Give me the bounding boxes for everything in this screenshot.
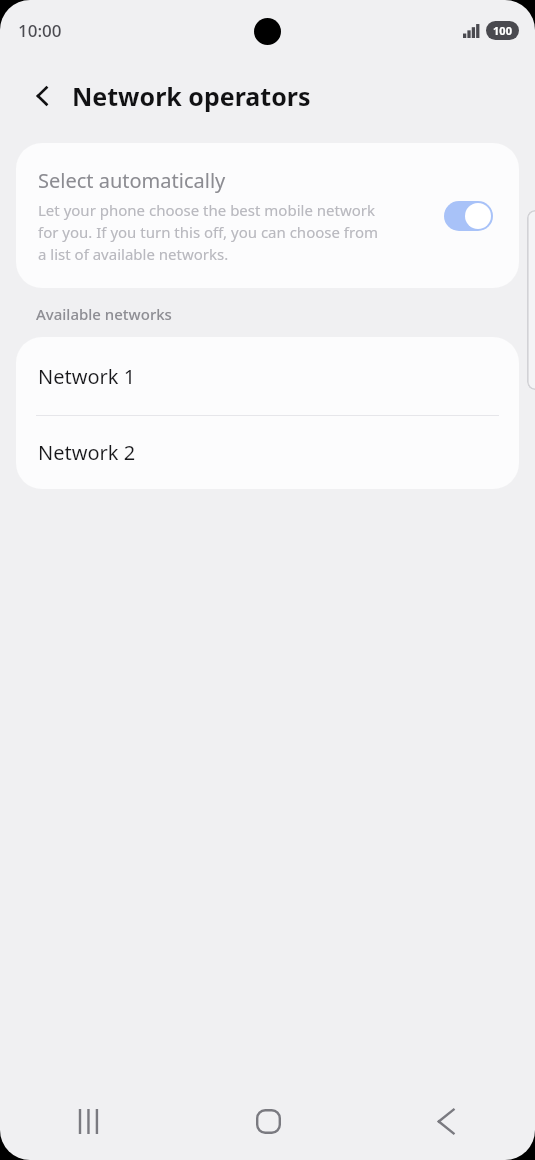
button[interactable]: Back: [22, 75, 64, 117]
staticText: Let your phone choose the best mobile ne…: [38, 200, 389, 265]
staticText: Available networks: [36, 304, 172, 324]
staticText: Network operators: [72, 79, 311, 113]
staticText: 100: [493, 23, 512, 38]
staticText: 10:00: [18, 19, 62, 42]
button[interactable]: Network 1: [16, 337, 519, 415]
button[interactable]: Recent apps: [0, 1082, 179, 1160]
staticText: Network 1: [38, 363, 136, 390]
button[interactable]: Select automatically toggle: [444, 201, 493, 231]
button[interactable]: Network 2: [16, 416, 519, 489]
staticText: Select automatically: [38, 167, 226, 194]
button[interactable]: Home: [179, 1082, 357, 1160]
button[interactable]: Back: [357, 1082, 535, 1160]
staticText: Network 2: [38, 439, 136, 466]
button[interactable]: Select automatically: [16, 143, 519, 288]
